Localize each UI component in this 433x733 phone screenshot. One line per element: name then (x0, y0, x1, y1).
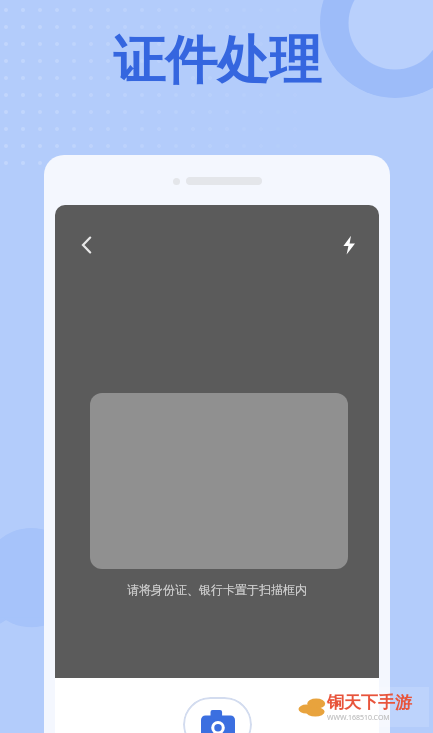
staticText: 请将身份证、银行卡置于扫描框内 (127, 582, 307, 597)
button[interactable]: Back (65, 223, 109, 267)
staticText: 铜天下手游 (327, 692, 412, 713)
staticText: 证件处理 (113, 28, 321, 94)
staticText: WWW.168510.COM (327, 713, 390, 723)
button[interactable]: Flash (327, 223, 371, 267)
button[interactable]: Take photo (183, 697, 252, 733)
